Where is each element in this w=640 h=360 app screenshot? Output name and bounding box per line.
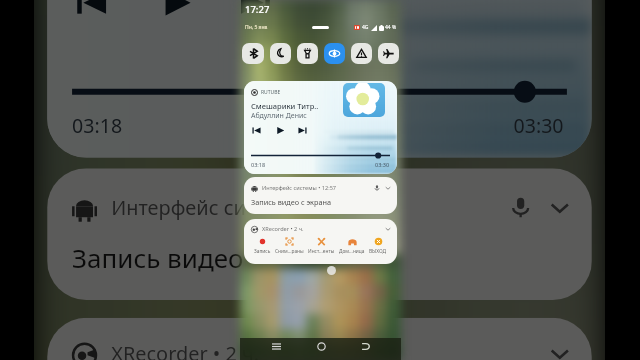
button[interactable]: Vibrate [351,43,372,64]
button[interactable]: Recents [268,338,284,354]
button[interactable]: Дом...ница [339,237,365,255]
button[interactable]: Play [274,124,287,137]
button[interactable]: Eye comfort shield [324,43,345,64]
staticText: Запись видео с экрана [72,239,360,275]
staticText: ВЫХОД [369,248,387,255]
staticText: 44 % [385,24,397,31]
button[interactable]: XRecorder • 2 ч. [47,318,592,360]
staticText: Запись видео с экрана [251,197,332,207]
button[interactable]: Reply [506,193,535,222]
button[interactable]: Expand [546,339,574,360]
button[interactable]: Flashlight [297,43,318,64]
staticText: 03:18 [72,111,125,136]
staticText: Интерфейс системы • 12:57 [111,193,378,222]
staticText: Сним...раны [275,248,304,255]
staticText: Дом...ница [339,248,365,255]
staticText: Смешарики Титр.. [251,101,319,111]
staticText: XRecorder • 2 ч. [262,225,304,233]
staticText: Пн, 5 янв [245,24,268,31]
button[interactable]: Do not disturb [270,43,291,64]
staticText: 03:30 [513,111,567,136]
button[interactable]: Airplane mode [378,43,399,64]
button[interactable]: Expand [384,225,392,233]
staticText: 4G [362,24,369,31]
button[interactable]: Next [232,0,279,26]
button[interactable]: Bluetooth [242,43,264,64]
button[interactable]: Next [296,124,309,137]
staticText: RUTUBE [261,89,281,96]
button[interactable]: Play [154,0,200,26]
staticText: Абдуллин Денис [251,111,307,121]
button[interactable]: Home [313,338,329,354]
button[interactable]: RUTUBE [47,0,592,158]
button[interactable]: Запись [254,237,271,255]
button[interactable]: Интерфейс системы • 12:57 [244,177,397,214]
button[interactable]: Expand [384,184,392,192]
staticText: Интерфейс системы • 12:57 [262,184,337,192]
button[interactable]: Expand [546,193,574,222]
staticText: Запись [254,248,271,255]
staticText: XRecorder • 2 ч. [111,339,261,360]
button[interactable]: Back [357,338,373,354]
staticText: 03:18 [251,161,266,168]
button[interactable]: XRecorder • 2 ч. [244,219,397,264]
button[interactable]: ВЫХОД [369,237,387,255]
staticText: 17:27 [245,3,270,16]
button[interactable]: Previous [250,124,263,137]
button[interactable]: Интерфейс системы • 12:57 [47,168,592,300]
staticText: 03:30 [375,161,390,168]
staticText: Инст...енты [308,248,335,255]
button[interactable]: Сним...раны [275,237,304,255]
button[interactable]: Previous [68,0,115,26]
button[interactable]: Reply [373,184,381,192]
button[interactable]: RUTUBE [244,81,397,174]
button[interactable]: Инст...енты [308,237,335,255]
